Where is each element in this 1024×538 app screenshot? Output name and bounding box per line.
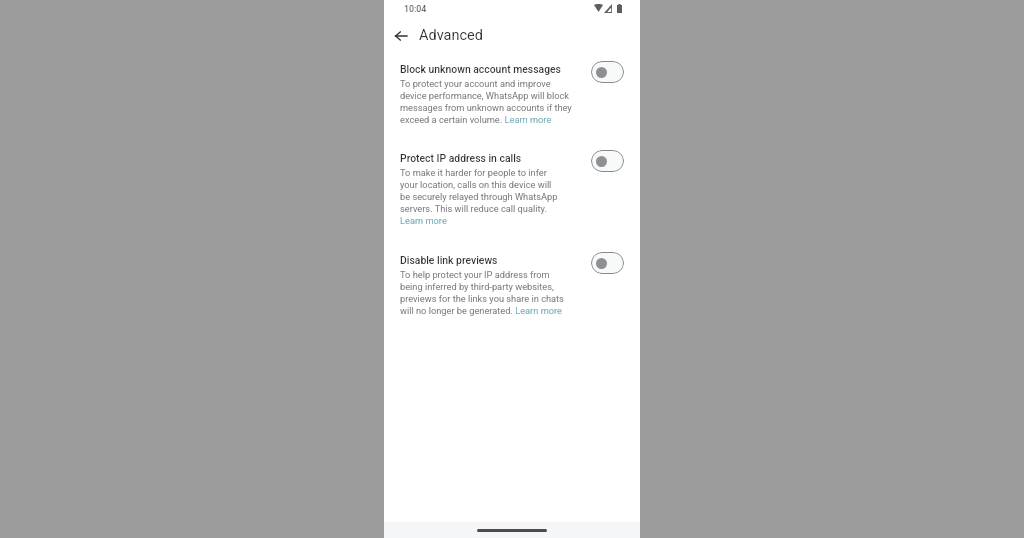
- staticText: 10:04: [404, 4, 427, 14]
- button[interactable]: Back: [390, 25, 412, 47]
- staticText: Disable link previews: [400, 254, 498, 266]
- staticText: Block unknown account messages: [400, 63, 561, 75]
- button[interactable]: Toggle: Disable link previews: [591, 252, 624, 274]
- staticText: To help protect your IP address from bei…: [400, 269, 564, 316]
- staticText: Advanced: [419, 27, 483, 44]
- button[interactable]: Protect IP address in calls: [384, 152, 640, 226]
- button[interactable]: Block unknown account messages: [384, 63, 640, 125]
- staticText: To protect your account and improve devi…: [400, 78, 572, 125]
- button[interactable]: Toggle: Protect IP address in calls: [591, 150, 624, 172]
- button[interactable]: Toggle: Block unknown account messages: [591, 61, 624, 83]
- button[interactable]: Disable link previews: [384, 254, 640, 316]
- staticText: Protect IP address in calls: [400, 152, 522, 164]
- staticText: To make it harder for people to infer yo…: [400, 167, 558, 226]
